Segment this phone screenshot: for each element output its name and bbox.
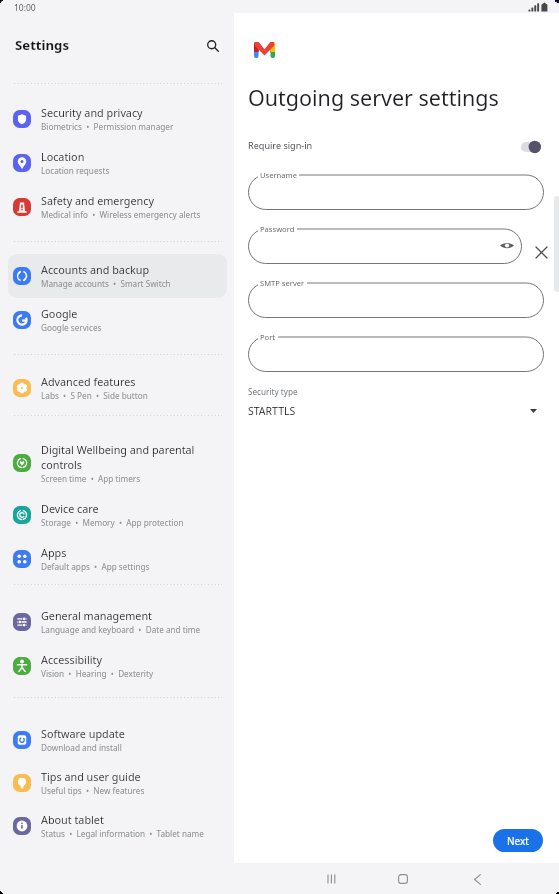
staticText: Accounts and backup bbox=[41, 262, 150, 277]
staticText: Location bbox=[41, 149, 85, 164]
staticText: Download and install bbox=[41, 742, 122, 753]
staticText: Security type bbox=[248, 386, 298, 397]
staticText: Google bbox=[41, 306, 78, 321]
button[interactable]: Search bbox=[199, 32, 227, 60]
staticText: Security and privacy bbox=[41, 105, 143, 120]
staticText: Settings bbox=[15, 36, 70, 54]
button[interactable]: Tips and user guide bbox=[8, 761, 227, 805]
staticText: Apps bbox=[41, 545, 67, 560]
staticText: Username bbox=[260, 170, 297, 180]
staticText: General management bbox=[41, 608, 152, 623]
button[interactable]: Device care bbox=[8, 493, 227, 537]
staticText: Language and keyboard • Date and time bbox=[41, 624, 201, 635]
staticText: Vision • Hearing • Dexterity bbox=[41, 668, 154, 679]
staticText: Outgoing server settings bbox=[248, 83, 499, 112]
button[interactable]: STARTTLS bbox=[248, 402, 537, 420]
staticText: Biometrics • Permission manager bbox=[41, 121, 174, 132]
button[interactable]: Digital Wellbeing and parental bbox=[8, 437, 227, 489]
staticText: Storage • Memory • App protection bbox=[41, 517, 184, 528]
staticText: Digital Wellbeing and parental bbox=[41, 442, 195, 457]
button[interactable]: Require sign-in bbox=[248, 134, 544, 156]
staticText: Default apps • App settings bbox=[41, 561, 150, 572]
button[interactable]: Recent apps bbox=[313, 861, 349, 894]
button[interactable]: Accessibility bbox=[8, 644, 227, 688]
button[interactable]: General management bbox=[8, 600, 227, 644]
staticText: Password bbox=[260, 224, 295, 234]
button[interactable]: About tablet bbox=[8, 804, 227, 848]
staticText: 10:00 bbox=[14, 2, 36, 14]
staticText: Screen time • App timers bbox=[41, 473, 141, 484]
staticText: Device care bbox=[41, 501, 99, 516]
staticText: Require sign-in bbox=[248, 139, 313, 151]
button[interactable]: Apps bbox=[8, 537, 227, 581]
button[interactable]: Advanced features bbox=[8, 366, 227, 410]
staticText: Status • Legal information • Tablet name bbox=[41, 828, 204, 839]
staticText: Next bbox=[507, 834, 529, 848]
button[interactable]: Clear bbox=[532, 243, 550, 261]
staticText: Tips and user guide bbox=[41, 769, 141, 784]
staticText: Advanced features bbox=[41, 374, 136, 389]
button[interactable]: Next bbox=[493, 829, 543, 852]
button[interactable]: Back bbox=[459, 861, 495, 894]
staticText: About tablet bbox=[41, 812, 104, 827]
button[interactable]: Location bbox=[8, 141, 227, 185]
staticText: Software update bbox=[41, 726, 125, 741]
staticText: SMTP server bbox=[260, 278, 305, 288]
staticText: controls bbox=[41, 457, 83, 472]
staticText: Google services bbox=[41, 322, 102, 333]
staticText: Labs • S Pen • Side button bbox=[41, 390, 148, 401]
staticText: Useful tips • New features bbox=[41, 785, 145, 796]
staticText: Accessibility bbox=[41, 652, 102, 667]
staticText: Port bbox=[260, 332, 276, 342]
staticText: Location requests bbox=[41, 165, 110, 176]
button[interactable]: Security and privacy bbox=[8, 97, 227, 141]
staticText: Medical info • Wireless emergency alerts bbox=[41, 209, 201, 220]
button[interactable]: Google bbox=[8, 298, 227, 342]
button[interactable]: Software update bbox=[8, 718, 227, 762]
staticText: STARTTLS bbox=[248, 404, 296, 418]
staticText: Manage accounts • Smart Switch bbox=[41, 278, 171, 289]
staticText: Safety and emergency bbox=[41, 193, 154, 208]
button[interactable]: Home bbox=[385, 861, 421, 894]
button[interactable]: Show password bbox=[499, 237, 515, 253]
button[interactable]: Safety and emergency bbox=[8, 185, 227, 229]
button[interactable]: Accounts and backup bbox=[8, 254, 227, 298]
